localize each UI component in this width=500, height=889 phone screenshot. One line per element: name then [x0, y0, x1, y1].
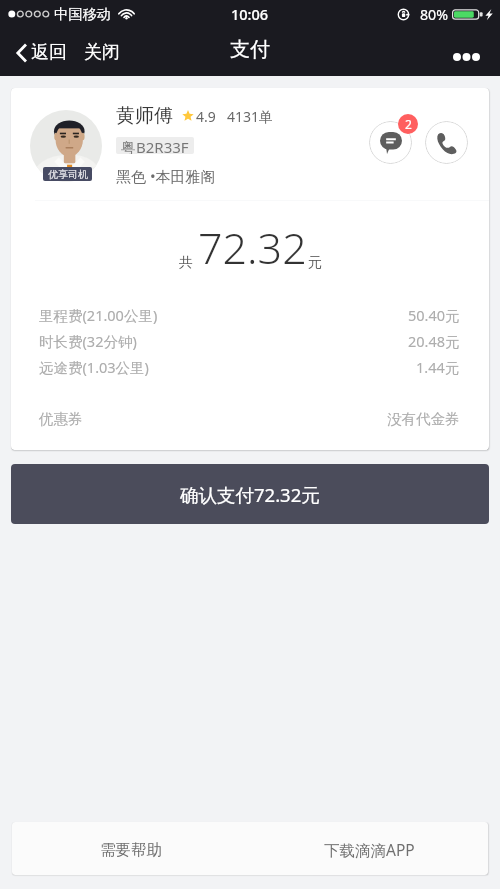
staticText: 返回	[31, 41, 67, 64]
staticText: 支付	[230, 37, 270, 62]
staticText: 元	[308, 254, 322, 272]
staticText: 优享司机	[48, 168, 88, 181]
staticText: 中国移动	[54, 5, 111, 23]
staticText: 共	[179, 254, 193, 272]
staticText: 关闭	[84, 41, 120, 64]
staticText: 80%	[420, 5, 449, 24]
button[interactable]: 需要帮助	[12, 822, 250, 875]
staticText: 远途费(1.03公里)	[39, 357, 149, 377]
staticText: 没有代金券	[387, 410, 460, 428]
staticText: 优惠券	[39, 410, 83, 428]
staticText: 黑色 •本田雅阁	[116, 166, 216, 186]
staticText: 20.48元	[408, 331, 460, 351]
staticText: 50.40元	[408, 305, 460, 325]
staticText: 2	[405, 116, 412, 132]
button[interactable]: More options	[446, 46, 487, 68]
staticText: 72.32	[198, 218, 307, 277]
staticText: 确认支付72.32元	[180, 482, 320, 507]
staticText: 4131单	[227, 107, 274, 126]
button[interactable]: Call driver	[425, 121, 468, 164]
staticText: 1.44元	[416, 357, 460, 377]
staticText: 4.9	[196, 107, 216, 126]
staticText: 黄师傅	[116, 104, 173, 128]
button[interactable]: Message driver	[369, 121, 412, 164]
button[interactable]: 关闭	[79, 33, 125, 72]
button[interactable]: 返回	[11, 33, 72, 72]
staticText: 10:06	[231, 4, 269, 24]
button[interactable]: 下载滴滴APP	[250, 822, 488, 875]
staticText: 时长费(32分钟)	[39, 331, 137, 351]
staticText: 需要帮助	[100, 840, 162, 860]
staticText: 下载滴滴APP	[324, 839, 415, 860]
staticText: 粤B2R33F	[121, 137, 189, 154]
staticText: 里程费(21.00公里)	[39, 305, 158, 325]
button[interactable]: 确认支付72.32元	[11, 464, 489, 524]
